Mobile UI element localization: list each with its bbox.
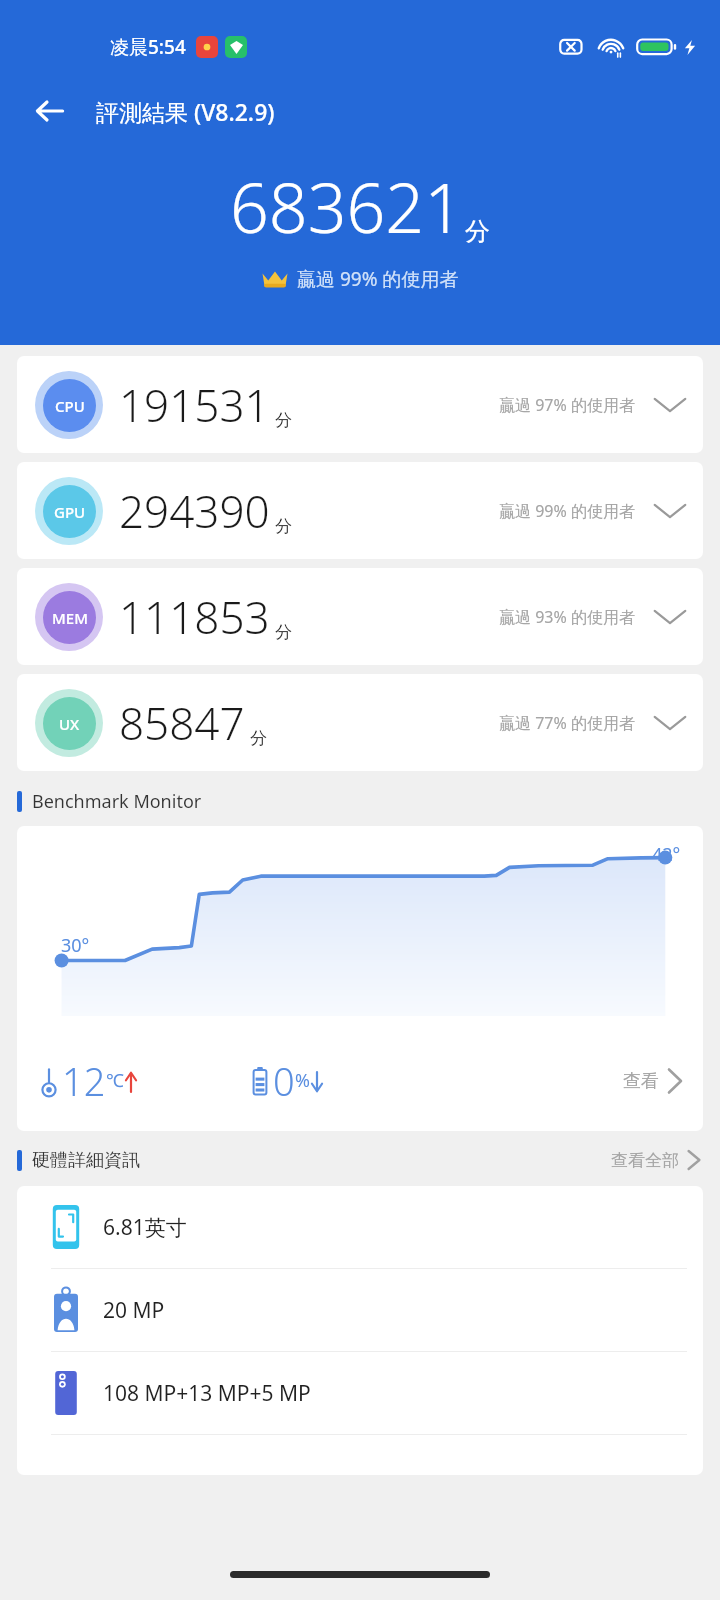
button[interactable]: Back <box>22 83 78 139</box>
button[interactable]: 查看全部 <box>611 1145 703 1175</box>
staticText: 294390 <box>119 481 270 541</box>
staticText: 贏過 99% 的使用者 <box>499 500 635 522</box>
staticText: 硬體詳細資訊 <box>32 1149 140 1172</box>
staticText: 108 MP+13 MP+5 MP <box>103 1379 311 1408</box>
staticText: 贏過 77% 的使用者 <box>499 712 635 734</box>
staticText: 12 <box>62 1055 106 1107</box>
staticText: 評測結果 (V8.2.9) <box>96 96 275 127</box>
button[interactable]: CPU <box>17 356 703 453</box>
button[interactable]: GPU <box>17 462 703 559</box>
staticText: 111853 <box>119 587 270 647</box>
staticText: 6.81英寸 <box>103 1213 187 1242</box>
staticText: 30° <box>61 933 90 958</box>
staticText: 分 <box>465 216 490 247</box>
staticText: UX <box>59 714 80 734</box>
staticText: 凌晨5:54 <box>110 34 186 60</box>
staticText: 42° <box>652 842 681 867</box>
staticText: 贏過 99% 的使用者 <box>297 266 459 292</box>
button[interactable]: 20 MP <box>17 1269 703 1351</box>
staticText: 20 MP <box>103 1296 165 1325</box>
button[interactable]: 6.81英寸 <box>17 1186 703 1268</box>
staticText: 贏過 93% 的使用者 <box>499 606 635 628</box>
staticText: 0 <box>273 1055 295 1107</box>
button[interactable]: 30° <box>17 826 703 1131</box>
staticText: 85847 <box>119 693 245 753</box>
button[interactable]: UX <box>17 674 703 771</box>
staticText: ℃ <box>106 1068 124 1093</box>
staticText: Benchmark Monitor <box>32 789 202 814</box>
button[interactable]: MEM <box>17 568 703 665</box>
staticText: 贏過 97% 的使用者 <box>499 394 635 416</box>
staticText: 查看 <box>623 1070 659 1093</box>
staticText: GPU <box>54 502 86 522</box>
staticText: 分 <box>275 516 292 537</box>
staticText: 分 <box>275 622 292 643</box>
staticText: % <box>295 1068 310 1093</box>
staticText: MEM <box>52 608 88 628</box>
staticText: CPU <box>55 396 85 416</box>
staticText: 191531 <box>119 375 270 435</box>
staticText: 分 <box>275 410 292 431</box>
staticText: 683621 <box>230 160 463 253</box>
staticText: 分 <box>250 728 267 749</box>
button[interactable]: 查看 <box>623 1063 685 1099</box>
staticText: 查看全部 <box>611 1150 679 1171</box>
button[interactable]: 108 MP+13 MP+5 MP <box>17 1352 703 1434</box>
